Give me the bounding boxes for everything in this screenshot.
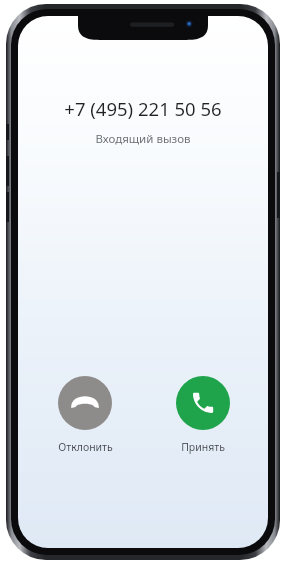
button[interactable]: Отклонить — [51, 376, 119, 454]
button[interactable]: Принять — [169, 376, 237, 454]
other: Отклонить — [58, 376, 112, 430]
staticText: Принять — [181, 440, 225, 454]
staticText: Входящий вызов — [95, 131, 191, 147]
staticText: Отклонить — [58, 440, 113, 454]
staticText: +7 (495) 221 50 56 — [64, 96, 222, 121]
other: Принять — [176, 376, 230, 430]
